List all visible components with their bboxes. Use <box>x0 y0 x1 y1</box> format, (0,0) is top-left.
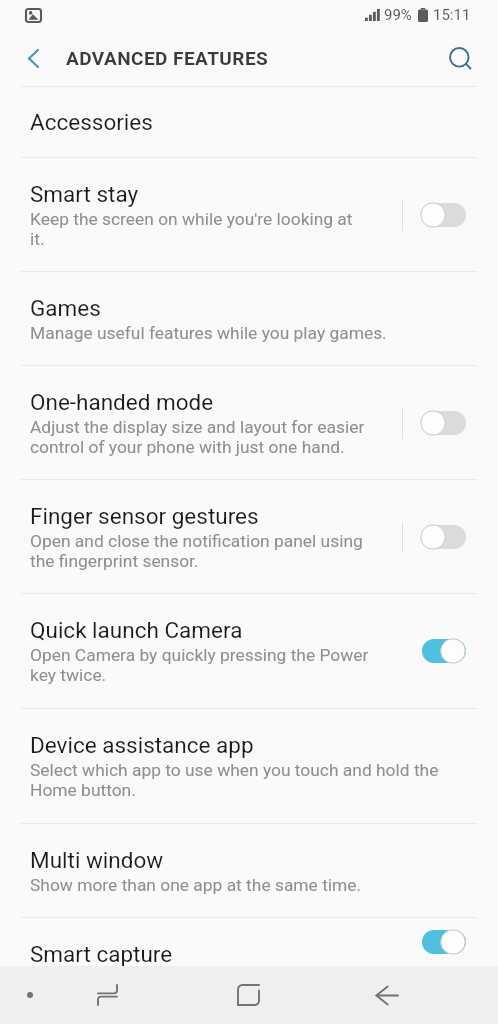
staticText: 99% <box>384 6 412 24</box>
button[interactable]: Accessories <box>0 87 498 157</box>
button[interactable]: Finger sensor gestures <box>0 480 498 593</box>
staticText: ADVANCED FEATURES <box>66 47 269 69</box>
button[interactable]: Navigate up <box>5 30 61 86</box>
button[interactable]: Turn on <box>420 407 466 439</box>
staticText: Open Camera by quickly pressing the Powe… <box>30 645 370 685</box>
staticText: Multi window <box>30 847 164 873</box>
staticText: Smart capture <box>30 941 173 966</box>
button[interactable]: Search <box>432 30 488 86</box>
staticText: Smart stay <box>30 181 139 207</box>
staticText: One-handed mode <box>30 389 214 415</box>
staticText: Open and close the notification panel us… <box>30 531 370 571</box>
staticText: Quick launch Camera <box>30 617 243 643</box>
staticText: Device assistance app <box>30 732 254 758</box>
button[interactable]: Multi window <box>0 824 498 917</box>
staticText: Games <box>30 295 101 321</box>
button[interactable]: Games <box>0 272 498 365</box>
button[interactable]: Home <box>219 966 277 1024</box>
staticText: 15:11 <box>433 6 471 24</box>
button[interactable]: Turn off <box>420 926 466 958</box>
button[interactable]: Turn off <box>420 635 466 667</box>
button[interactable]: Turn on <box>420 521 466 553</box>
staticText: Accessories <box>30 109 153 135</box>
button[interactable]: Recent apps <box>78 966 136 1024</box>
button[interactable]: Smart capture <box>0 918 498 966</box>
button[interactable]: Turn on <box>420 199 466 231</box>
button[interactable]: Device assistance app <box>0 709 498 823</box>
button[interactable]: One-handed mode <box>0 366 498 479</box>
button[interactable]: Back <box>358 966 416 1024</box>
staticText: Finger sensor gestures <box>30 503 259 529</box>
button[interactable]: Smart stay <box>0 158 498 271</box>
staticText: Keep the screen on while you're looking … <box>30 209 370 249</box>
staticText: Select which app to use when you touch a… <box>30 760 450 800</box>
button[interactable]: Quick launch Camera <box>0 594 498 708</box>
button[interactable]: Hide navigation bar <box>1 966 59 1024</box>
staticText: Adjust the display size and layout for e… <box>30 417 370 457</box>
staticText: Manage useful features while you play ga… <box>30 323 387 343</box>
staticText: Show more than one app at the same time. <box>30 875 362 895</box>
